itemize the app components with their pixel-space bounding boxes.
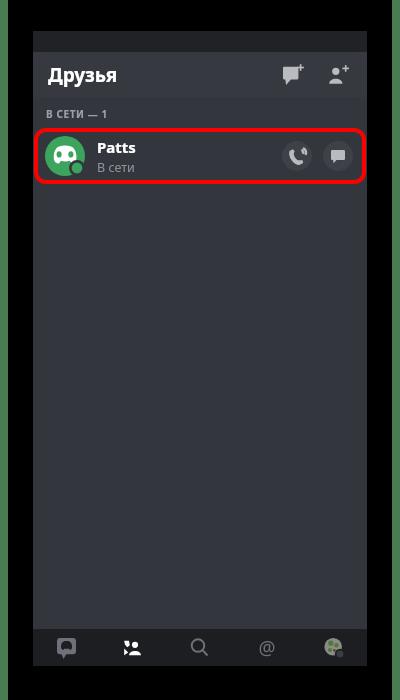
button[interactable]: Patts bbox=[34, 128, 366, 184]
button[interactable]: Servers bbox=[33, 629, 99, 666]
button[interactable]: Add friend bbox=[321, 58, 355, 92]
button[interactable]: Profile bbox=[300, 629, 367, 666]
button[interactable]: Call bbox=[282, 141, 312, 171]
staticText: @ bbox=[258, 635, 276, 661]
staticText: Patts bbox=[97, 137, 136, 157]
staticText: Друзья bbox=[48, 62, 118, 88]
button[interactable]: New message bbox=[277, 58, 311, 92]
button[interactable]: Mentions bbox=[233, 629, 300, 666]
button[interactable]: Friends bbox=[99, 629, 166, 666]
button[interactable]: Message bbox=[323, 141, 353, 171]
staticText: В сети bbox=[97, 159, 135, 176]
button[interactable]: Search bbox=[166, 629, 233, 666]
staticText: В СЕТИ — 1 bbox=[46, 107, 108, 121]
